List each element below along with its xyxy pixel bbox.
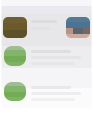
button[interactable] <box>0 46 93 66</box>
button[interactable] <box>0 17 93 38</box>
button[interactable] <box>0 82 93 101</box>
